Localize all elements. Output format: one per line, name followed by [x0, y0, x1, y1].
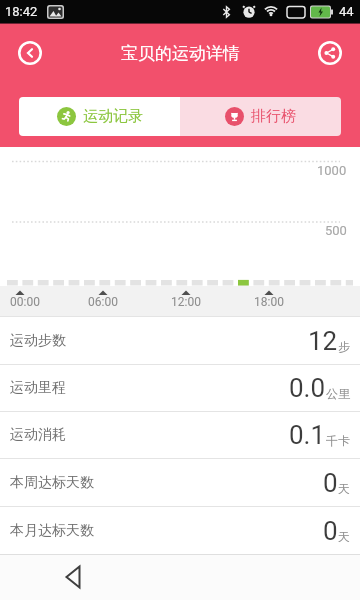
staticText: 天: [338, 481, 350, 496]
staticText: 本月达标天数: [10, 522, 94, 540]
staticText: 1000: [317, 163, 347, 178]
staticText: 18:00: [254, 295, 284, 309]
staticText: 运动里程: [10, 379, 66, 397]
staticText: 运动消耗: [10, 426, 66, 444]
staticText: 步: [338, 339, 350, 354]
staticText: 12:00: [171, 295, 201, 309]
button[interactable]: 运动里程: [0, 365, 360, 411]
button[interactable]: 排行榜: [180, 97, 341, 136]
button[interactable]: [18, 41, 42, 65]
staticText: 公里: [326, 386, 350, 401]
staticText: 06:00: [88, 295, 118, 309]
staticText: 18:42: [5, 4, 38, 19]
staticText: 运动记录: [83, 107, 143, 126]
staticText: 排行榜: [251, 107, 296, 126]
staticText: 500: [325, 223, 347, 238]
button[interactable]: 本月达标天数: [0, 507, 360, 554]
button[interactable]: 运动消耗: [0, 412, 360, 458]
button[interactable]: 运动记录: [19, 97, 180, 136]
staticText: 本周达标天数: [10, 474, 94, 492]
button[interactable]: [57, 559, 93, 595]
staticText: 天: [338, 529, 350, 544]
staticText: 12: [308, 326, 338, 356]
button[interactable]: [318, 41, 342, 65]
staticText: 0: [323, 468, 338, 498]
staticText: 宝贝的运动详情: [121, 43, 240, 64]
button[interactable]: 运动步数: [0, 317, 360, 364]
staticText: 0.0: [289, 373, 326, 403]
staticText: 0: [323, 516, 338, 546]
staticText: 44: [339, 4, 354, 19]
staticText: 运动步数: [10, 332, 66, 350]
staticText: 千卡: [326, 433, 350, 448]
staticText: 00:00: [10, 295, 40, 309]
staticText: 0.1: [289, 420, 326, 450]
button[interactable]: 本周达标天数: [0, 459, 360, 506]
